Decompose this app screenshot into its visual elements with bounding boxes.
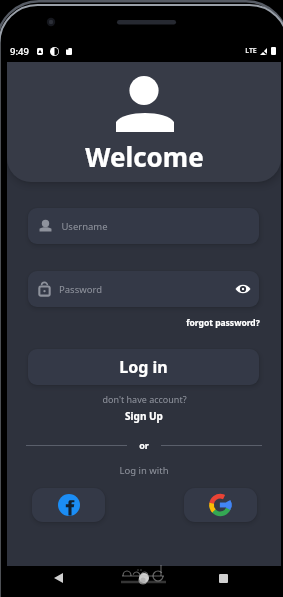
staticText: Welcome xyxy=(85,139,204,174)
staticText: Log in with xyxy=(119,464,169,477)
button[interactable]: forgot password? xyxy=(184,315,262,331)
staticText: Sign Up xyxy=(125,409,163,423)
button[interactable]: Password xyxy=(28,271,259,307)
staticText: 9:49 xyxy=(10,45,29,58)
button[interactable]: Recent apps xyxy=(211,566,235,590)
staticText: Username xyxy=(61,220,108,233)
staticText: don't have account? xyxy=(102,393,187,405)
staticText: forgot password? xyxy=(186,317,260,329)
button[interactable]: Back xyxy=(46,566,70,590)
other: Show password xyxy=(235,283,251,295)
staticText: LTE xyxy=(245,46,257,56)
button[interactable]: Log in with Google xyxy=(184,488,257,522)
button[interactable]: Home xyxy=(132,566,156,590)
staticText: or xyxy=(139,439,149,451)
button[interactable]: Log in with Facebook xyxy=(32,488,105,522)
staticText: Log in xyxy=(119,356,168,378)
button[interactable]: Username xyxy=(28,208,259,244)
button[interactable]: Log in xyxy=(28,349,259,385)
staticText: Password xyxy=(59,283,102,296)
button[interactable]: Sign Up xyxy=(123,407,165,425)
